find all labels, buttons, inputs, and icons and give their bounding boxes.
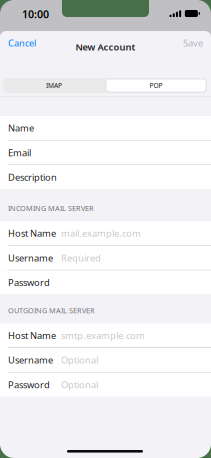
button[interactable]: Username: [0, 246, 211, 270]
staticText: 10:00: [22, 7, 49, 21]
staticText: smtp.example.com: [61, 329, 145, 342]
staticText: Cancel: [8, 37, 36, 49]
staticText: Required: [61, 252, 101, 264]
button[interactable]: Password: [0, 373, 211, 397]
staticText: Password: [8, 378, 50, 391]
button[interactable]: Host Name: [0, 323, 211, 347]
staticText: POP: [149, 81, 162, 90]
button[interactable]: Host Name: [0, 221, 211, 245]
staticText: OUTGOING MAIL SERVER: [8, 305, 95, 315]
button[interactable]: Description: [0, 165, 211, 189]
button[interactable]: IMAP: [3, 78, 105, 93]
staticText: INCOMING MAIL SERVER: [8, 203, 94, 213]
staticText: mail.example.com: [61, 227, 141, 239]
button[interactable]: POP: [105, 78, 207, 93]
staticText: Username: [8, 252, 53, 264]
staticText: Host Name: [8, 227, 56, 239]
staticText: Email: [8, 146, 31, 159]
button[interactable]: Username: [0, 348, 211, 372]
staticText: Host Name: [8, 329, 56, 342]
button[interactable]: Email: [0, 141, 211, 165]
staticText: Password: [8, 276, 50, 289]
staticText: Optional: [61, 354, 98, 366]
staticText: Save: [183, 37, 203, 49]
button[interactable]: Save: [169, 33, 211, 53]
staticText: IMAP: [46, 81, 62, 90]
staticText: Optional: [61, 378, 98, 391]
staticText: Name: [8, 122, 34, 134]
staticText: Description: [8, 171, 57, 183]
button[interactable]: Password: [0, 270, 211, 294]
button[interactable]: Cancel: [0, 33, 50, 53]
staticText: New Account: [75, 41, 135, 53]
staticText: Username: [8, 354, 53, 366]
button[interactable]: Name: [0, 116, 211, 140]
